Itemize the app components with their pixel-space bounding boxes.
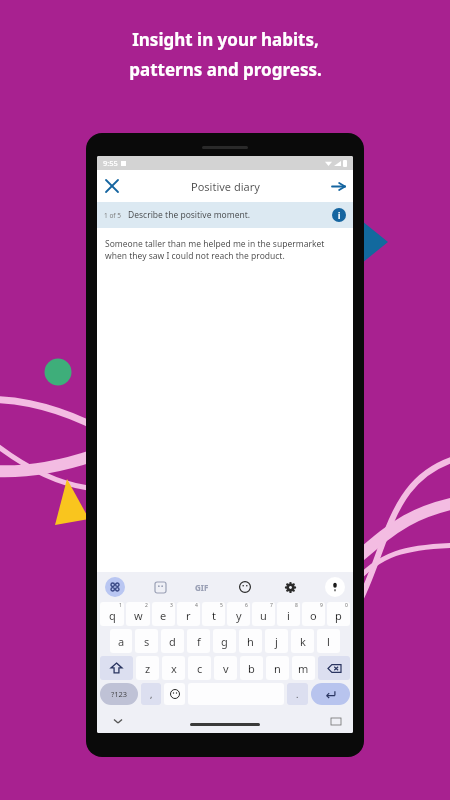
staticText: k [300, 634, 306, 649]
button[interactable]: Emoji [235, 577, 255, 597]
staticText: q [109, 608, 116, 623]
staticText: 8 [295, 602, 298, 609]
staticText: i [338, 210, 341, 221]
staticText: Positive diary [191, 179, 260, 194]
staticText: Someone taller than me helped me in the … [105, 238, 341, 262]
button[interactable]: d [161, 629, 184, 653]
staticText: r [186, 608, 191, 623]
staticText: x [171, 661, 177, 676]
staticText: 4 [195, 602, 198, 609]
button[interactable]: v [214, 656, 237, 680]
button[interactable]: l [317, 629, 340, 653]
staticText: 9:55 [103, 158, 118, 168]
staticText: o [310, 608, 317, 623]
button[interactable]: t [202, 602, 225, 626]
staticText: f [197, 634, 201, 649]
staticText: g [221, 634, 228, 649]
staticText: 5 [220, 602, 223, 609]
button[interactable]: , [141, 683, 161, 705]
staticText: d [169, 634, 176, 649]
staticText: p [335, 608, 342, 623]
button[interactable]: b [240, 656, 263, 680]
staticText: 1 of 5 [104, 211, 121, 220]
button[interactable]: Close [97, 171, 127, 201]
staticText: m [298, 661, 309, 676]
button[interactable]: Voice input [325, 577, 345, 597]
button[interactable]: g [213, 629, 236, 653]
staticText: w [134, 608, 143, 623]
button[interactable]: f [187, 629, 210, 653]
staticText: y [236, 608, 242, 623]
button[interactable]: Keyboard layout [331, 718, 341, 725]
button[interactable]: m [292, 656, 315, 680]
staticText: v [223, 661, 229, 676]
button[interactable]: r [177, 602, 200, 626]
button[interactable]: i [277, 602, 300, 626]
button[interactable]: a [110, 629, 132, 653]
staticText: 2 [145, 602, 148, 609]
staticText: 1 [119, 602, 122, 609]
staticText: i [287, 608, 290, 623]
staticText: Insight in your habits, [132, 28, 319, 51]
button[interactable]: Shift [100, 656, 133, 680]
staticText: GIF [195, 582, 209, 593]
button[interactable]: x [162, 656, 185, 680]
staticText: h [247, 634, 254, 649]
button[interactable]: Hide keyboard [111, 714, 125, 728]
button[interactable]: Emoji [164, 683, 185, 705]
button[interactable]: e [152, 602, 175, 626]
staticText: n [274, 661, 281, 676]
staticText: 9 [320, 602, 323, 609]
staticText: 7 [270, 602, 273, 609]
staticText: 0 [345, 602, 348, 609]
button[interactable]: q [100, 602, 124, 626]
staticText: z [145, 661, 151, 676]
button[interactable]: o [302, 602, 325, 626]
staticText: j [275, 634, 278, 649]
staticText: a [118, 634, 125, 649]
staticText: ?123 [111, 689, 128, 699]
staticText: l [327, 634, 330, 649]
staticText: Describe the positive moment. [128, 209, 251, 221]
staticText: e [160, 608, 167, 623]
button[interactable]: u [252, 602, 275, 626]
button[interactable]: GIF [195, 582, 209, 593]
button[interactable]: Information [332, 208, 346, 222]
button[interactable]: h [239, 629, 262, 653]
button[interactable]: s [135, 629, 158, 653]
button[interactable]: c [188, 656, 211, 680]
staticText: c [197, 661, 203, 676]
staticText: 6 [245, 602, 248, 609]
staticText: 3 [170, 602, 173, 609]
button[interactable]: Next [323, 171, 353, 201]
staticText: s [144, 634, 150, 649]
button[interactable]: z [136, 656, 159, 680]
button[interactable]: w [126, 602, 150, 626]
staticText: . [296, 688, 299, 700]
button[interactable]: Apps [105, 577, 125, 597]
button[interactable]: Enter [311, 683, 350, 705]
staticText: , [150, 688, 153, 700]
staticText: t [212, 608, 216, 623]
button[interactable]: . [287, 683, 308, 705]
button[interactable]: y [227, 602, 250, 626]
button[interactable]: ?123 [100, 683, 138, 705]
button[interactable]: Stickers [150, 577, 170, 597]
staticText: b [248, 661, 255, 676]
staticText: u [260, 608, 267, 623]
button[interactable]: Settings [280, 577, 300, 597]
button[interactable]: Backspace [318, 656, 350, 680]
button[interactable]: k [291, 629, 314, 653]
button[interactable]: p [327, 602, 350, 626]
button[interactable]: j [265, 629, 288, 653]
staticText: patterns and progress. [129, 58, 322, 81]
button[interactable]: n [266, 656, 289, 680]
